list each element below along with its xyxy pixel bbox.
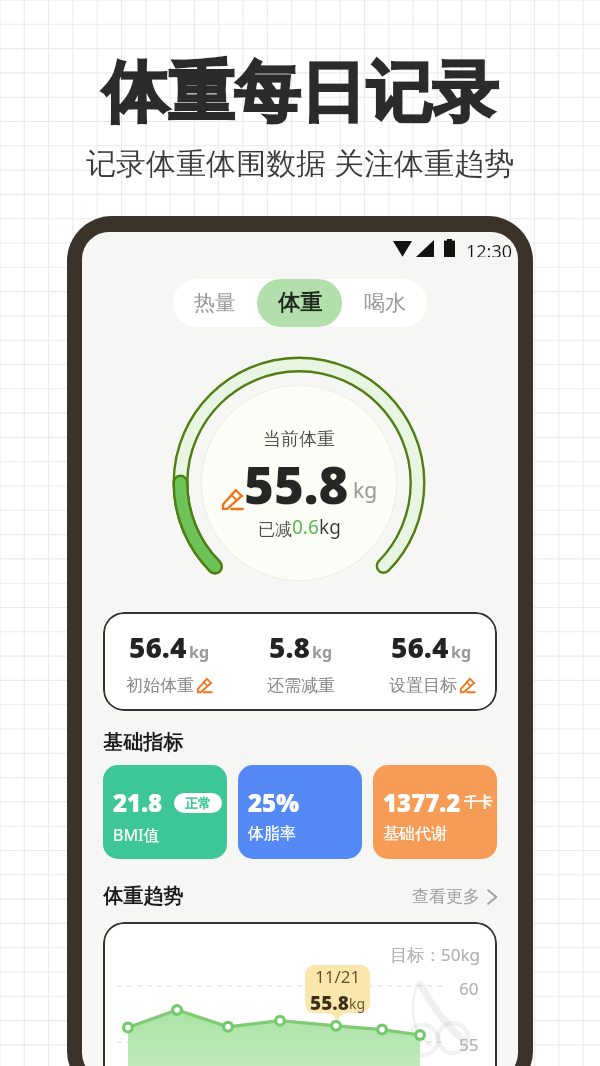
staticText: 千卡 — [464, 794, 492, 812]
staticText: 初始体重 — [126, 675, 194, 696]
button[interactable]: 56.4 — [366, 612, 497, 711]
staticText: kg — [349, 994, 366, 1013]
staticText: 5.8 — [269, 628, 310, 666]
staticText: 体脂率 — [248, 824, 296, 844]
button[interactable]: 查看更多 — [412, 886, 497, 907]
button[interactable]: 21.8 — [103, 765, 227, 859]
staticText: 0.6 — [292, 514, 319, 540]
staticText: 基础指标 — [103, 730, 183, 755]
staticText: 60 — [459, 977, 479, 1000]
button[interactable]: 5.8 — [235, 612, 366, 711]
staticText: 55.8 — [310, 990, 349, 1013]
button[interactable]: 1377.2 — [373, 765, 497, 859]
staticText: kg — [451, 641, 472, 663]
staticText: 基础代谢 — [383, 824, 447, 844]
staticText: 当前体重 — [263, 428, 335, 451]
staticText: 体重 — [278, 289, 322, 317]
staticText: 11/21 — [315, 965, 361, 988]
staticText: 56.4 — [391, 628, 449, 666]
staticText: 体重每日记录 — [102, 51, 498, 134]
staticText: kg — [312, 641, 333, 663]
button[interactable]: 25% — [238, 765, 362, 859]
button[interactable]: 56.4 — [103, 612, 235, 711]
staticText: kg — [189, 641, 210, 663]
staticText: 查看更多 — [412, 886, 480, 907]
staticText: 热量 — [194, 290, 236, 316]
button[interactable]: 热量 — [173, 279, 257, 327]
staticText: 55 — [459, 1033, 479, 1056]
staticText: 还需减重 — [267, 675, 335, 696]
button[interactable]: 体重 — [257, 279, 342, 327]
staticText: 1377.2 — [383, 786, 461, 819]
staticText: 设置目标 — [389, 675, 457, 696]
staticText: 正常 — [185, 795, 211, 811]
staticText: 目标：50kg — [390, 943, 480, 966]
staticText: kg — [319, 514, 341, 540]
staticText: 记录体重体围数据 关注体重趋势 — [86, 142, 514, 183]
staticText: 已减 — [258, 519, 292, 540]
staticText: 体重趋势 — [103, 884, 183, 909]
staticText: kg — [353, 476, 378, 505]
staticText: BMI值 — [113, 824, 160, 846]
staticText: 喝水 — [364, 290, 406, 316]
button[interactable]: 喝水 — [342, 279, 427, 327]
staticText: 56.4 — [129, 628, 187, 666]
staticText: 55.8 — [244, 449, 349, 518]
staticText: 25% — [248, 786, 299, 819]
staticText: 21.8 — [113, 786, 163, 819]
staticText: 12:30 — [466, 239, 513, 257]
